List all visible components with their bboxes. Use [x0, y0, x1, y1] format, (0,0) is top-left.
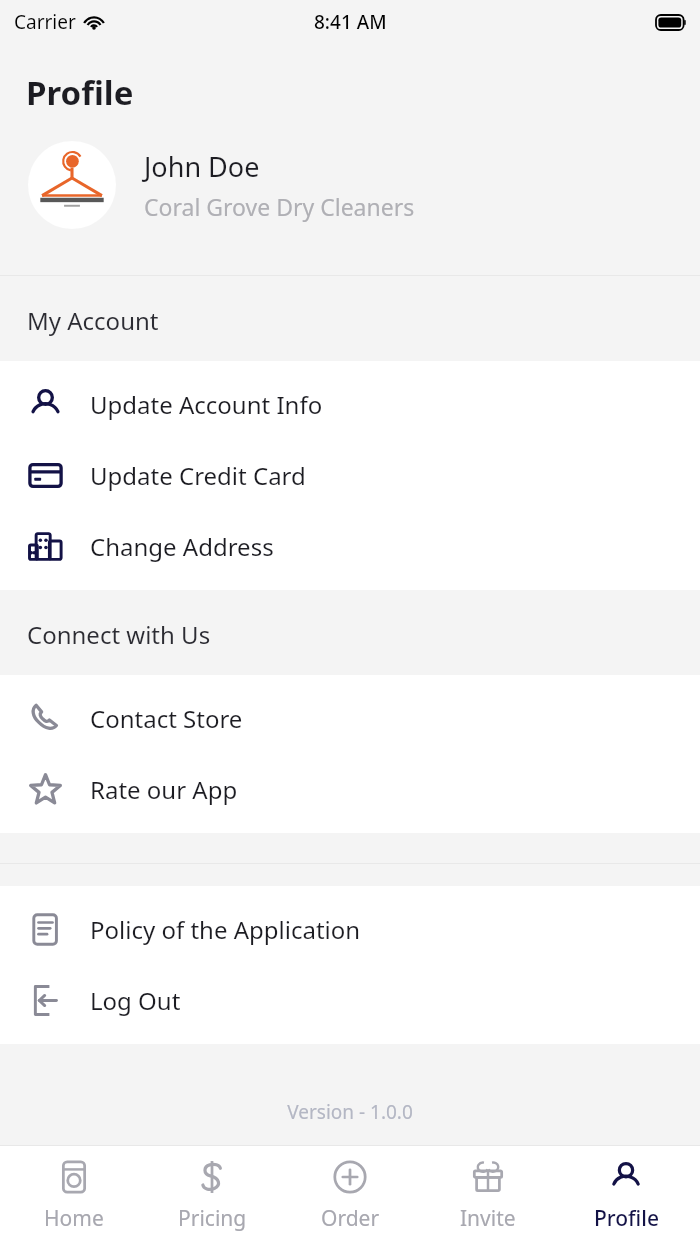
staticText: Change Address — [90, 530, 274, 563]
button[interactable]: Profile — [562, 1152, 690, 1239]
button[interactable]: Update Credit Card — [0, 440, 700, 511]
staticText: Profile — [594, 1204, 659, 1233]
button[interactable]: Home — [10, 1152, 138, 1239]
staticText: Update Credit Card — [90, 459, 306, 492]
staticText: Carrier — [14, 9, 76, 35]
staticText: John Doe — [144, 148, 260, 185]
staticText: Coral Grove Dry Cleaners — [144, 191, 415, 222]
button[interactable]: Log Out — [0, 965, 700, 1036]
button[interactable]: Update Account Info — [0, 369, 700, 440]
button[interactable]: Rate our App — [0, 754, 700, 825]
staticText: Pricing — [178, 1204, 247, 1233]
staticText: Invite — [460, 1204, 516, 1233]
staticText: Version - 1.0.0 — [0, 1099, 700, 1125]
staticText: My Account — [27, 304, 159, 337]
staticText: Order — [321, 1204, 380, 1233]
button[interactable]: Policy of the Application — [0, 894, 700, 965]
staticText: Rate our App — [90, 773, 238, 806]
button[interactable]: Pricing — [148, 1152, 276, 1239]
button[interactable]: John Doe — [28, 141, 700, 229]
staticText: Connect with Us — [27, 618, 211, 651]
button[interactable]: Invite — [424, 1152, 552, 1239]
button[interactable]: Contact Store — [0, 683, 700, 754]
staticText: 8:41 AM — [314, 9, 387, 35]
staticText: Profile — [26, 70, 134, 115]
button[interactable]: Order — [286, 1152, 414, 1239]
button[interactable]: Change Address — [0, 511, 700, 582]
staticText: Contact Store — [90, 702, 243, 735]
staticText: Policy of the Application — [90, 913, 361, 946]
staticText: Log Out — [90, 984, 181, 1017]
staticText: Update Account Info — [90, 388, 323, 421]
staticText: Home — [44, 1204, 104, 1233]
